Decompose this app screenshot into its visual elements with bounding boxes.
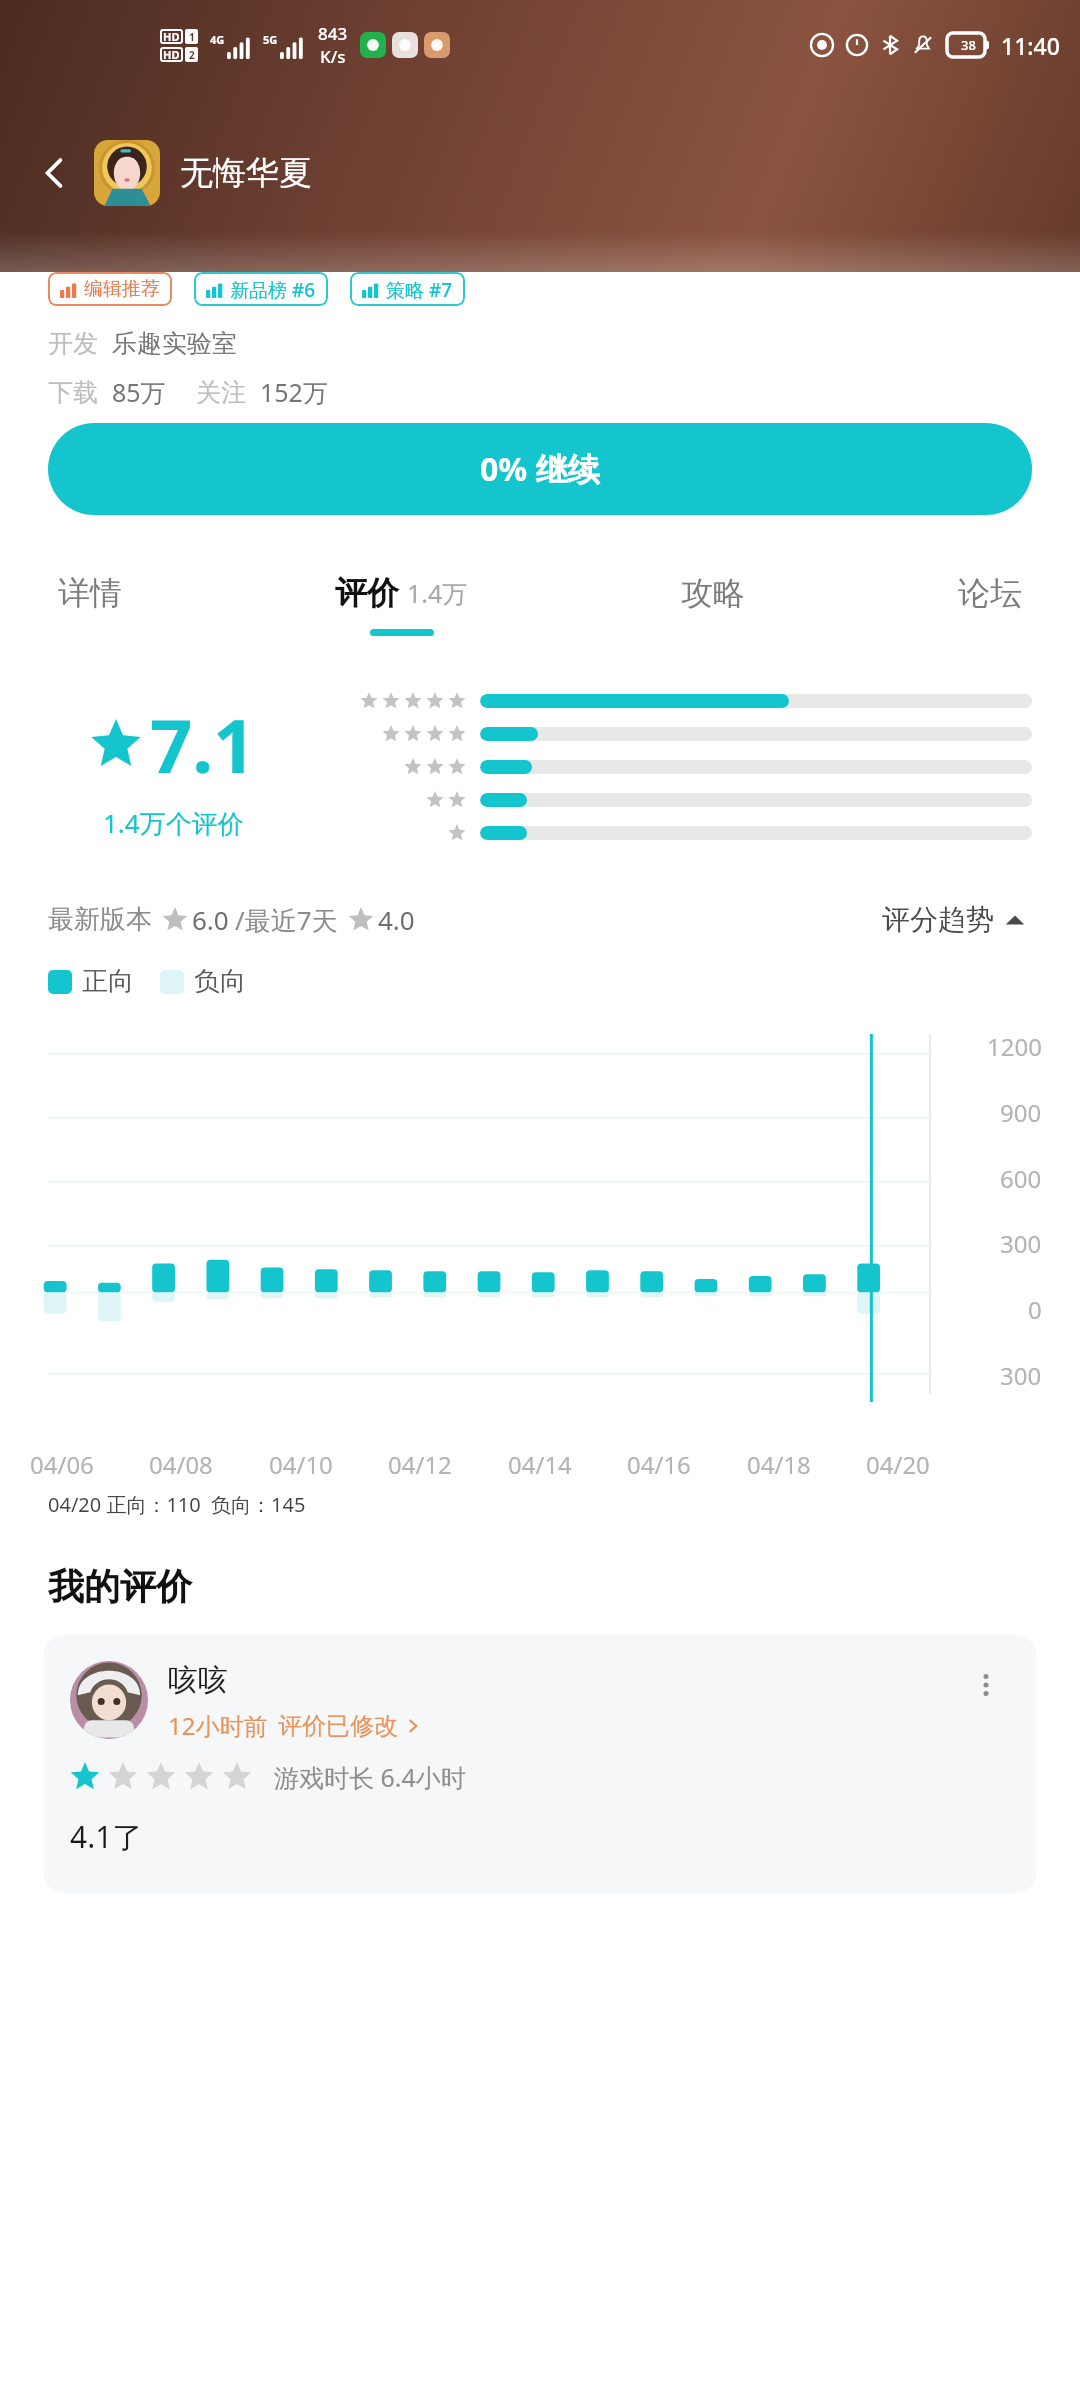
staticText: 38 (961, 36, 976, 54)
staticText: 04/12 (388, 1448, 452, 1481)
staticText: 乐趣实验室 (112, 328, 237, 359)
staticText: 评价已修改 (278, 1711, 398, 1741)
button[interactable]: 评分趋势 (876, 896, 1032, 943)
staticText: 5G (263, 32, 278, 47)
staticText: 04/06 (30, 1448, 94, 1481)
staticText: 评价 (335, 573, 399, 613)
button[interactable]: 咳咳 (44, 1635, 1036, 1893)
staticText: 1.4万个评价 (103, 805, 244, 841)
staticText: 详情 (58, 573, 122, 613)
staticText: 4.1了 (70, 1816, 143, 1857)
staticText: K/s (320, 45, 346, 68)
staticText: 开发 (48, 328, 98, 359)
staticText: 04/16 (627, 1448, 691, 1481)
staticText: 下载 (48, 377, 98, 408)
staticText: 0 (1028, 1293, 1042, 1326)
button[interactable]: Back (26, 144, 84, 202)
staticText: 152万 (260, 375, 328, 409)
button[interactable]: 策略 #7 (350, 272, 465, 306)
staticText: 11:40 (1001, 30, 1060, 61)
staticText: 新品榜 #6 (230, 277, 316, 301)
staticText: 4G (210, 32, 225, 47)
button[interactable]: 详情 (40, 567, 140, 635)
staticText: 300 (1000, 1359, 1042, 1392)
staticText: 策略 #7 (386, 277, 453, 301)
staticText: 负向 (194, 965, 246, 998)
staticText: 最新版本 (48, 903, 152, 936)
button[interactable]: 攻略 (663, 567, 763, 635)
staticText: 关注 (196, 377, 246, 408)
staticText: 4.0 (378, 902, 415, 937)
button[interactable]: 编辑推荐 (48, 272, 172, 306)
staticText: 游戏时长 6.4小时 (274, 1760, 466, 1794)
staticText: 1.4万 (407, 576, 468, 610)
staticText: 评分趋势 (882, 902, 994, 937)
staticText: /最近7天 (235, 902, 338, 938)
staticText: 0% 继续 (480, 447, 600, 491)
staticText: 04/10 (269, 1448, 333, 1481)
staticText: 攻略 (681, 573, 745, 613)
staticText: 85万 (112, 375, 166, 409)
button[interactable]: 论坛 (940, 567, 1040, 635)
staticText: 7.1 (150, 694, 256, 795)
staticText: 04/08 (149, 1448, 213, 1481)
button[interactable]: 新品榜 #6 (194, 272, 328, 306)
staticText: 04/20 正向：110 负向：145 (48, 1491, 306, 1518)
button[interactable]: 0% 继续 (48, 423, 1032, 515)
staticText: HD (163, 29, 180, 44)
staticText: 无悔华夏 (180, 152, 312, 194)
staticText: 04/20 (866, 1448, 930, 1481)
staticText: 正向 (82, 965, 134, 998)
staticText: 900 (1000, 1096, 1042, 1129)
staticText: 6.0 (192, 902, 229, 937)
staticText: 咳咳 (168, 1661, 228, 1699)
staticText: 编辑推荐 (84, 277, 160, 301)
button[interactable]: 评价 (317, 567, 486, 642)
staticText: 1 (189, 30, 195, 44)
button[interactable]: More options (962, 1661, 1010, 1709)
staticText: 1200 (987, 1030, 1042, 1063)
staticText: 2 (189, 48, 195, 62)
staticText: 843 (318, 22, 348, 45)
staticText: 论坛 (958, 573, 1022, 613)
staticText: 04/18 (747, 1448, 811, 1481)
staticText: HD (163, 47, 180, 62)
staticText: 300 (1000, 1227, 1042, 1260)
staticText: 12小时前 (168, 1709, 268, 1742)
staticText: 我的评价 (48, 1564, 192, 1609)
staticText: 600 (1000, 1162, 1042, 1195)
staticText: 04/14 (508, 1448, 572, 1481)
